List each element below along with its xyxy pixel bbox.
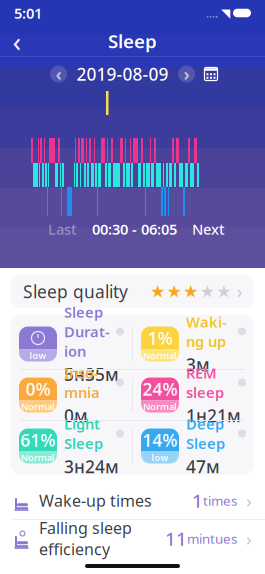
staticText: 47м <box>186 455 220 478</box>
button[interactable]: 0% <box>11 370 132 420</box>
button[interactable]: Next <box>192 219 225 239</box>
staticText: › <box>183 62 189 85</box>
staticText: 2019-08-09 <box>76 62 168 85</box>
staticText: 11 <box>165 526 187 551</box>
staticText: ‹ <box>12 22 21 60</box>
button[interactable]: Back <box>0 26 34 56</box>
button[interactable]: 1% <box>133 319 254 369</box>
button[interactable]: 61% <box>11 421 132 471</box>
button[interactable]: low <box>11 319 132 369</box>
staticText: ★ <box>216 282 232 301</box>
staticText: 1% <box>147 326 172 349</box>
staticText: 3м <box>186 353 210 376</box>
staticText: 3н24м <box>64 455 119 478</box>
staticText: .... <box>206 5 218 21</box>
staticText: Last <box>48 219 77 239</box>
staticText: 14% <box>142 428 177 451</box>
staticText: ‹ <box>55 62 61 85</box>
button[interactable]: Last <box>48 219 77 239</box>
staticText: › <box>246 488 252 513</box>
staticText: ★ <box>199 282 215 301</box>
staticText: › <box>237 280 242 303</box>
staticText: 00:30 - 06:05 <box>92 219 177 239</box>
button[interactable]: Previous day <box>47 63 69 85</box>
staticText: ★ <box>150 282 166 301</box>
staticText: Deep Sleep <box>186 414 225 453</box>
staticText: Insomnia <box>64 363 100 402</box>
staticText: 5н35м <box>64 363 119 386</box>
staticText: 1н21м <box>186 404 241 427</box>
staticText: ★ <box>183 282 199 301</box>
staticText: 5:01 <box>14 3 42 23</box>
staticText: Sleep <box>108 29 157 53</box>
button[interactable]: Next day <box>175 63 197 85</box>
staticText: 0м <box>64 404 88 427</box>
staticText: times <box>203 492 237 509</box>
staticText: mintues <box>187 530 237 547</box>
button[interactable]: 14% <box>133 421 254 471</box>
staticText: Normal <box>21 400 55 413</box>
staticText: Light Sleep <box>64 414 103 453</box>
button[interactable]: Falling sleep efficiency <box>0 520 265 557</box>
button[interactable]: Wake-up times <box>0 482 265 519</box>
staticText: ★ <box>166 282 182 301</box>
staticText: Next <box>192 219 225 239</box>
staticText: 1 <box>192 488 203 513</box>
button[interactable]: 24% <box>133 370 254 420</box>
staticText: › <box>246 526 252 551</box>
staticText: Falling sleep efficiency <box>39 517 132 560</box>
staticText: Normal <box>21 451 55 464</box>
staticText: Sleep Duration <box>64 302 110 361</box>
button[interactable]: Sleep quality <box>11 275 254 308</box>
button[interactable]: Open calendar <box>204 67 217 80</box>
staticText: REM sleep <box>186 363 224 402</box>
staticText: Normal <box>143 349 177 362</box>
staticText: Sleep quality <box>23 280 128 303</box>
staticText: ◥ <box>221 6 230 20</box>
staticText: 0% <box>25 377 50 400</box>
staticText: 61% <box>20 428 55 451</box>
staticText: 24% <box>142 377 177 400</box>
staticText: Normal <box>143 400 177 413</box>
staticText: low <box>151 451 168 464</box>
staticText: Waking up <box>186 312 227 351</box>
staticText: low <box>29 349 46 362</box>
staticText: Wake-up times <box>39 490 152 511</box>
